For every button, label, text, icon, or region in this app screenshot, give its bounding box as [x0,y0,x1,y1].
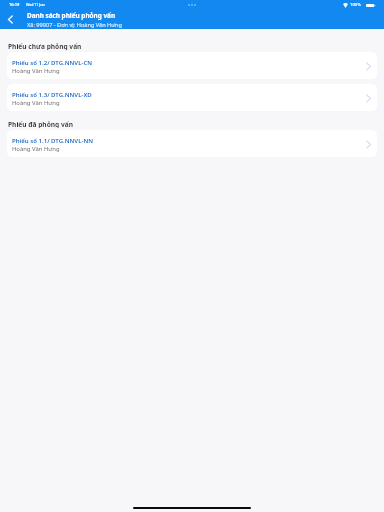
staticText: Phiếu đã phỏng vấn [8,120,73,128]
staticText: Xã: 99907 - Đơn vị: Hoàng Văn Hưng [27,21,122,29]
staticText: Hoàng Văn Hưng [12,99,60,107]
staticText: Wed 11 Jun [26,2,45,7]
button[interactable]: Phiếu số 1.2/ DTG.NNVL-CN [7,52,377,79]
button[interactable]: Phiếu số 1.3/ DTG.NNVL-XD [7,84,377,111]
staticText: Hoàng Văn Hưng [12,67,60,75]
button[interactable]: Back [0,10,21,29]
staticText: Phiếu số 1.1/ DTG.NNVL-NN [12,137,93,145]
staticText: Phiếu số 1.3/ DTG.NNVL-XD [12,91,92,99]
staticText: Phiếu chưa phỏng vấn [8,42,82,50]
staticText: Hoàng Văn Hưng [12,145,60,153]
button[interactable]: Phiếu số 1.1/ DTG.NNVL-NN [7,130,377,157]
staticText: Phiếu số 1.2/ DTG.NNVL-CN [12,59,93,67]
staticText: Danh sách phiếu phỏng vấn [27,11,116,20]
staticText: 100% [350,2,361,8]
staticText: 16:19 [9,2,20,7]
